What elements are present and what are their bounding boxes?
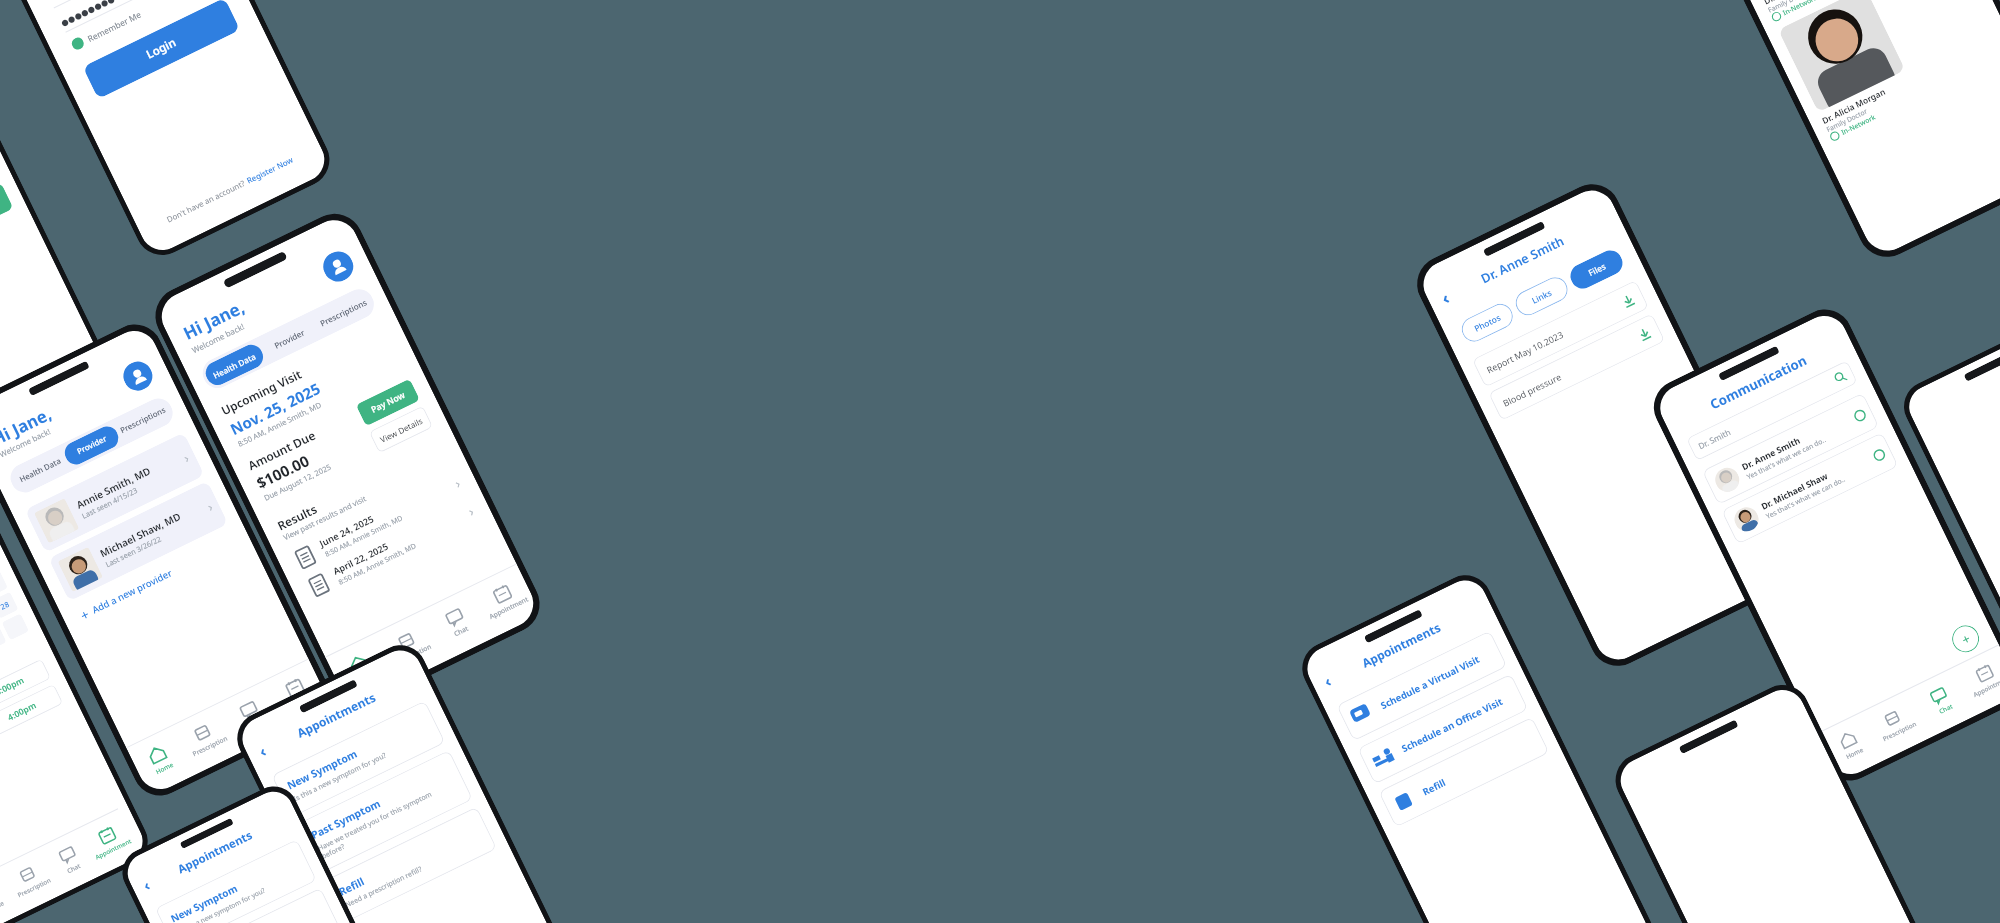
button[interactable]: New Symptom [285, 714, 432, 804]
button[interactable]: Chat [422, 587, 491, 656]
button[interactable]: ‹ [1320, 670, 1335, 691]
staticText: Need a prescription refill? [344, 864, 425, 910]
staticText: Yes that's what we can do.. [1745, 435, 1827, 481]
button[interactable]: Health Data [202, 341, 267, 389]
button[interactable]: Refill [336, 820, 484, 910]
button[interactable]: Files [1566, 246, 1627, 293]
button[interactable]: Home [0, 867, 20, 923]
button[interactable]: Appointment [51, 360, 109, 421]
button[interactable]: Health Data [10, 448, 71, 493]
staticText: Provider [272, 326, 307, 351]
staticText: Don't have an account? [165, 178, 247, 226]
button[interactable]: Photos [1457, 300, 1517, 346]
button[interactable]: Prescriptions [112, 398, 173, 443]
button[interactable]: Chat [1908, 668, 1974, 732]
button[interactable]: Blood pressure [1500, 325, 1653, 409]
button[interactable]: Home [325, 634, 396, 703]
staticText: Refill [1420, 776, 1449, 798]
button[interactable]: ‹ [1437, 286, 1454, 309]
staticText: Appointment [281, 688, 322, 714]
button[interactable]: Past Symptom [309, 763, 460, 861]
staticText: View past results and visit [281, 493, 368, 542]
button[interactable]: Prescriptions [310, 288, 375, 336]
button[interactable]: Profile [318, 246, 358, 286]
button[interactable]: Make an Appointment [0, 182, 14, 280]
button[interactable]: Dr. Smith [1696, 370, 1848, 451]
button[interactable]: 4:00pm [0, 684, 63, 739]
staticText: Provider [75, 433, 109, 457]
staticText: Michael Shaw, MD [97, 509, 184, 560]
button[interactable]: + [77, 564, 176, 625]
button[interactable]: ‹ [140, 875, 154, 895]
button[interactable]: Prescription [1862, 690, 1928, 754]
button[interactable]: Appointment [1953, 645, 2000, 710]
staticText: Prescriptions [318, 296, 369, 328]
staticText: Report May 10.2023 [1484, 299, 1625, 376]
staticText: Health Data [211, 350, 258, 381]
staticText: Have we treated you for this symptom bef… [199, 916, 331, 923]
button[interactable]: June 24, 2025 [290, 471, 465, 572]
button[interactable]: Michael Shaw, MD [58, 490, 219, 592]
button[interactable]: Dr. Anne Smith [1711, 402, 1870, 496]
staticText: April 22, 2025 [331, 540, 390, 578]
staticText: Dr. Alicia Morgan [1820, 85, 1888, 126]
button[interactable]: Login [82, 0, 240, 99]
staticText: Dr. Michael Shaw [1759, 470, 1830, 513]
button[interactable]: Schedule an Office Visit [1369, 686, 1516, 772]
staticText: Is this a new symptom for you? [292, 750, 389, 804]
button[interactable]: April 22, 2025 [304, 499, 478, 600]
button[interactable]: New Symptom [168, 852, 304, 923]
staticText: 8:50 AM, Annie Smith, MD [323, 512, 405, 559]
button[interactable]: Dr. Alicia Morgan [1778, 0, 1920, 142]
button[interactable]: ‹ [255, 740, 270, 761]
button[interactable]: Prescription [171, 704, 238, 769]
button[interactable]: Home [126, 726, 192, 791]
button[interactable]: 3:00pm [0, 659, 51, 714]
staticText: Family Doctor [1767, 0, 1811, 14]
button[interactable] [1, 613, 29, 640]
button[interactable]: Report May 10.2023 [1484, 292, 1637, 376]
staticText: Login [143, 34, 179, 63]
staticText: $100.00 [253, 450, 313, 494]
staticText: Prescription [0, 424, 30, 448]
staticText: Links [1530, 287, 1553, 306]
button[interactable]: Register Now [245, 154, 296, 186]
button[interactable]: Prescription [0, 396, 35, 457]
button[interactable]: Appointment [469, 564, 539, 632]
staticText: Dr. Smith [1696, 375, 1838, 451]
button[interactable]: Pay Now [356, 378, 420, 426]
button[interactable]: Provider [256, 314, 321, 362]
staticText: Appointment [487, 594, 530, 621]
button[interactable]: Chat [217, 682, 284, 747]
button[interactable] [0, 624, 7, 651]
button[interactable]: Annie Smith, MD [34, 442, 195, 544]
button[interactable]: Links [1511, 273, 1572, 320]
button[interactable]: Refill [1390, 729, 1537, 815]
button[interactable]: Prescription [0, 848, 59, 908]
staticText: › [451, 474, 464, 492]
staticText: 28 [0, 599, 11, 612]
staticText: Appointment [1972, 673, 2000, 699]
button[interactable]: Home [1817, 712, 1882, 776]
staticText: Schedule a Virtual Visit [1378, 653, 1482, 712]
button[interactable]: Provider [61, 423, 122, 468]
button[interactable]: 21 [0, 570, 8, 597]
button[interactable]: Appointment [263, 659, 330, 725]
button[interactable]: Appointment [79, 809, 138, 870]
button[interactable]: Past Symptom [192, 901, 331, 923]
button[interactable]: Schedule a Virtual Visit [1348, 642, 1495, 729]
button[interactable]: Chat [14, 378, 72, 439]
button[interactable]: Prescription [374, 611, 444, 679]
button[interactable]: Dr. Kevin Patel [1720, 0, 1858, 23]
button[interactable]: Chat [39, 828, 99, 889]
button[interactable]: View Details [369, 405, 433, 453]
staticText: View Details [378, 415, 424, 445]
button[interactable]: New message [1948, 621, 1984, 657]
staticText: › [204, 498, 215, 515]
button[interactable]: Dr. Michael Shaw [1730, 441, 1889, 535]
staticText: Appointments [294, 689, 378, 741]
staticText: Chat [246, 716, 264, 731]
button[interactable]: Profile [118, 357, 157, 395]
button[interactable]: 28 [0, 592, 19, 619]
